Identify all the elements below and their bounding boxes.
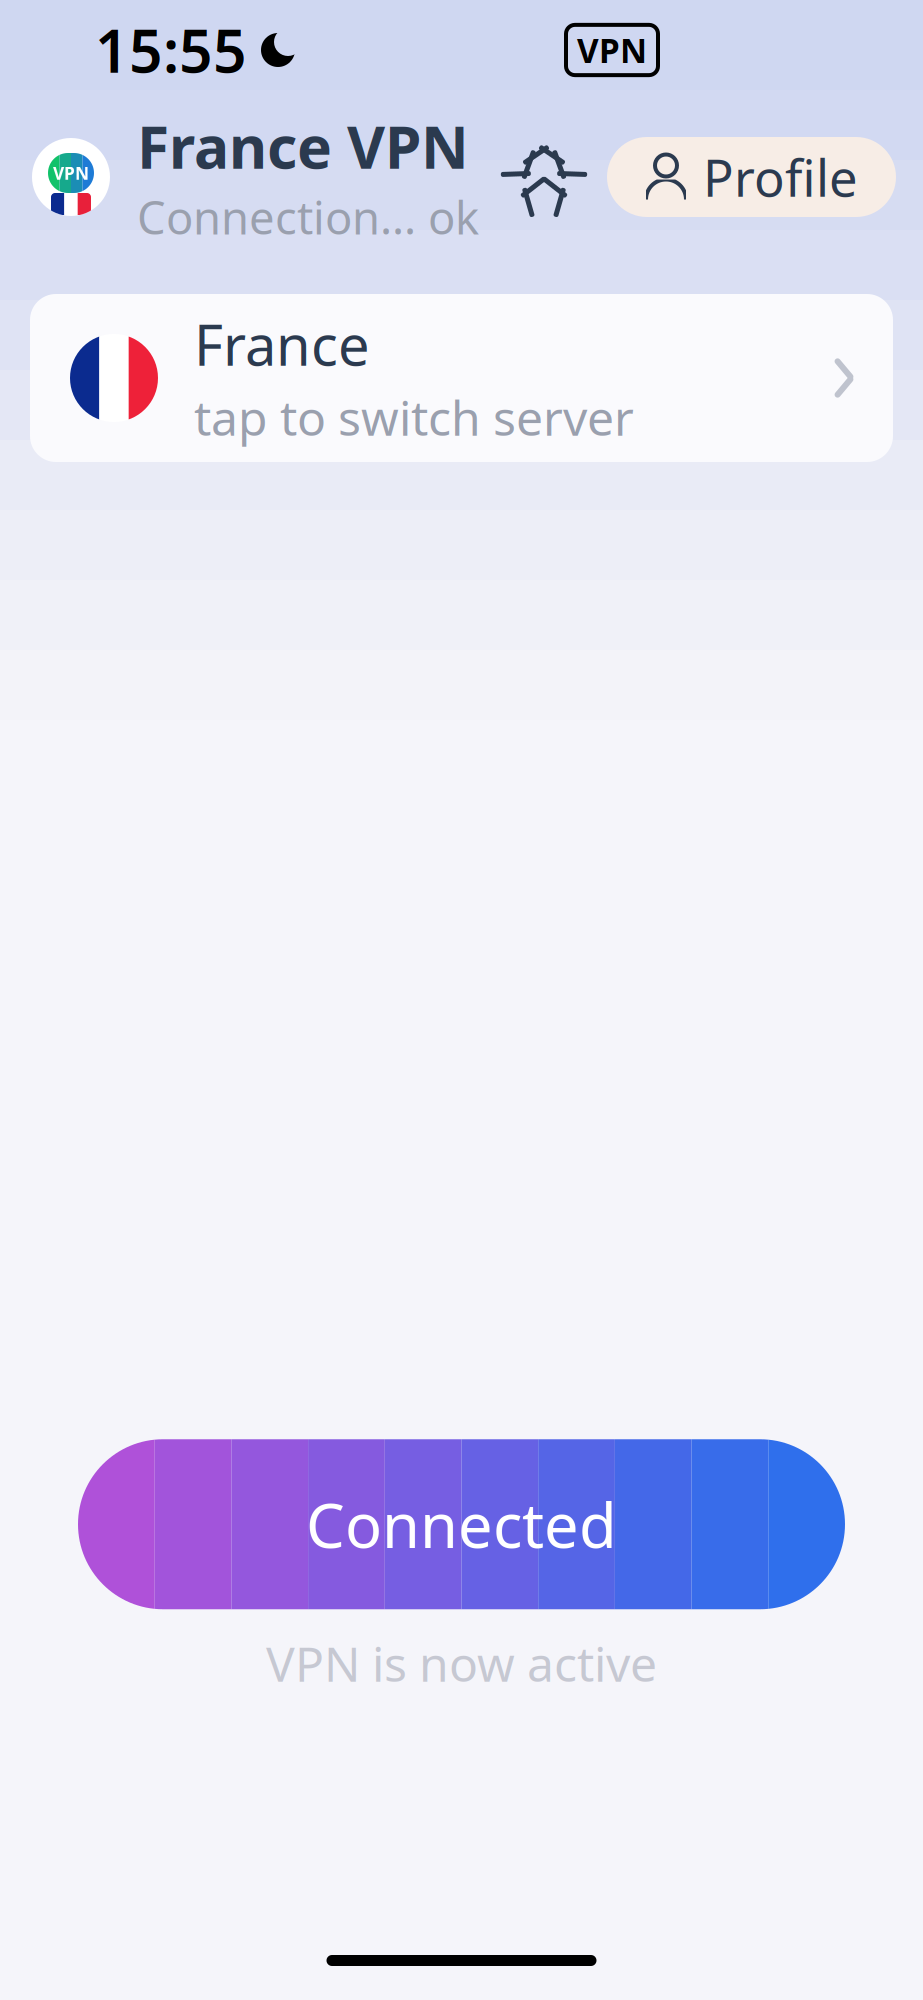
staticText: VPN is now active xyxy=(266,1631,657,1695)
staticText: VPN xyxy=(53,161,89,184)
staticText: France VPN xyxy=(137,107,469,185)
staticText: France xyxy=(194,307,370,381)
button[interactable]: Connected xyxy=(0,1439,923,1609)
staticText: Connected xyxy=(306,1483,617,1565)
staticText: tap to switch server xyxy=(194,385,634,449)
button[interactable]: Favourite xyxy=(506,139,582,215)
staticText: 15:55 xyxy=(95,11,247,89)
staticText: Connection... ok xyxy=(137,187,479,247)
button[interactable]: Profile xyxy=(607,137,896,217)
button[interactable]: France xyxy=(30,294,893,462)
staticText: Profile xyxy=(703,143,858,211)
staticText: VPN xyxy=(577,28,647,72)
